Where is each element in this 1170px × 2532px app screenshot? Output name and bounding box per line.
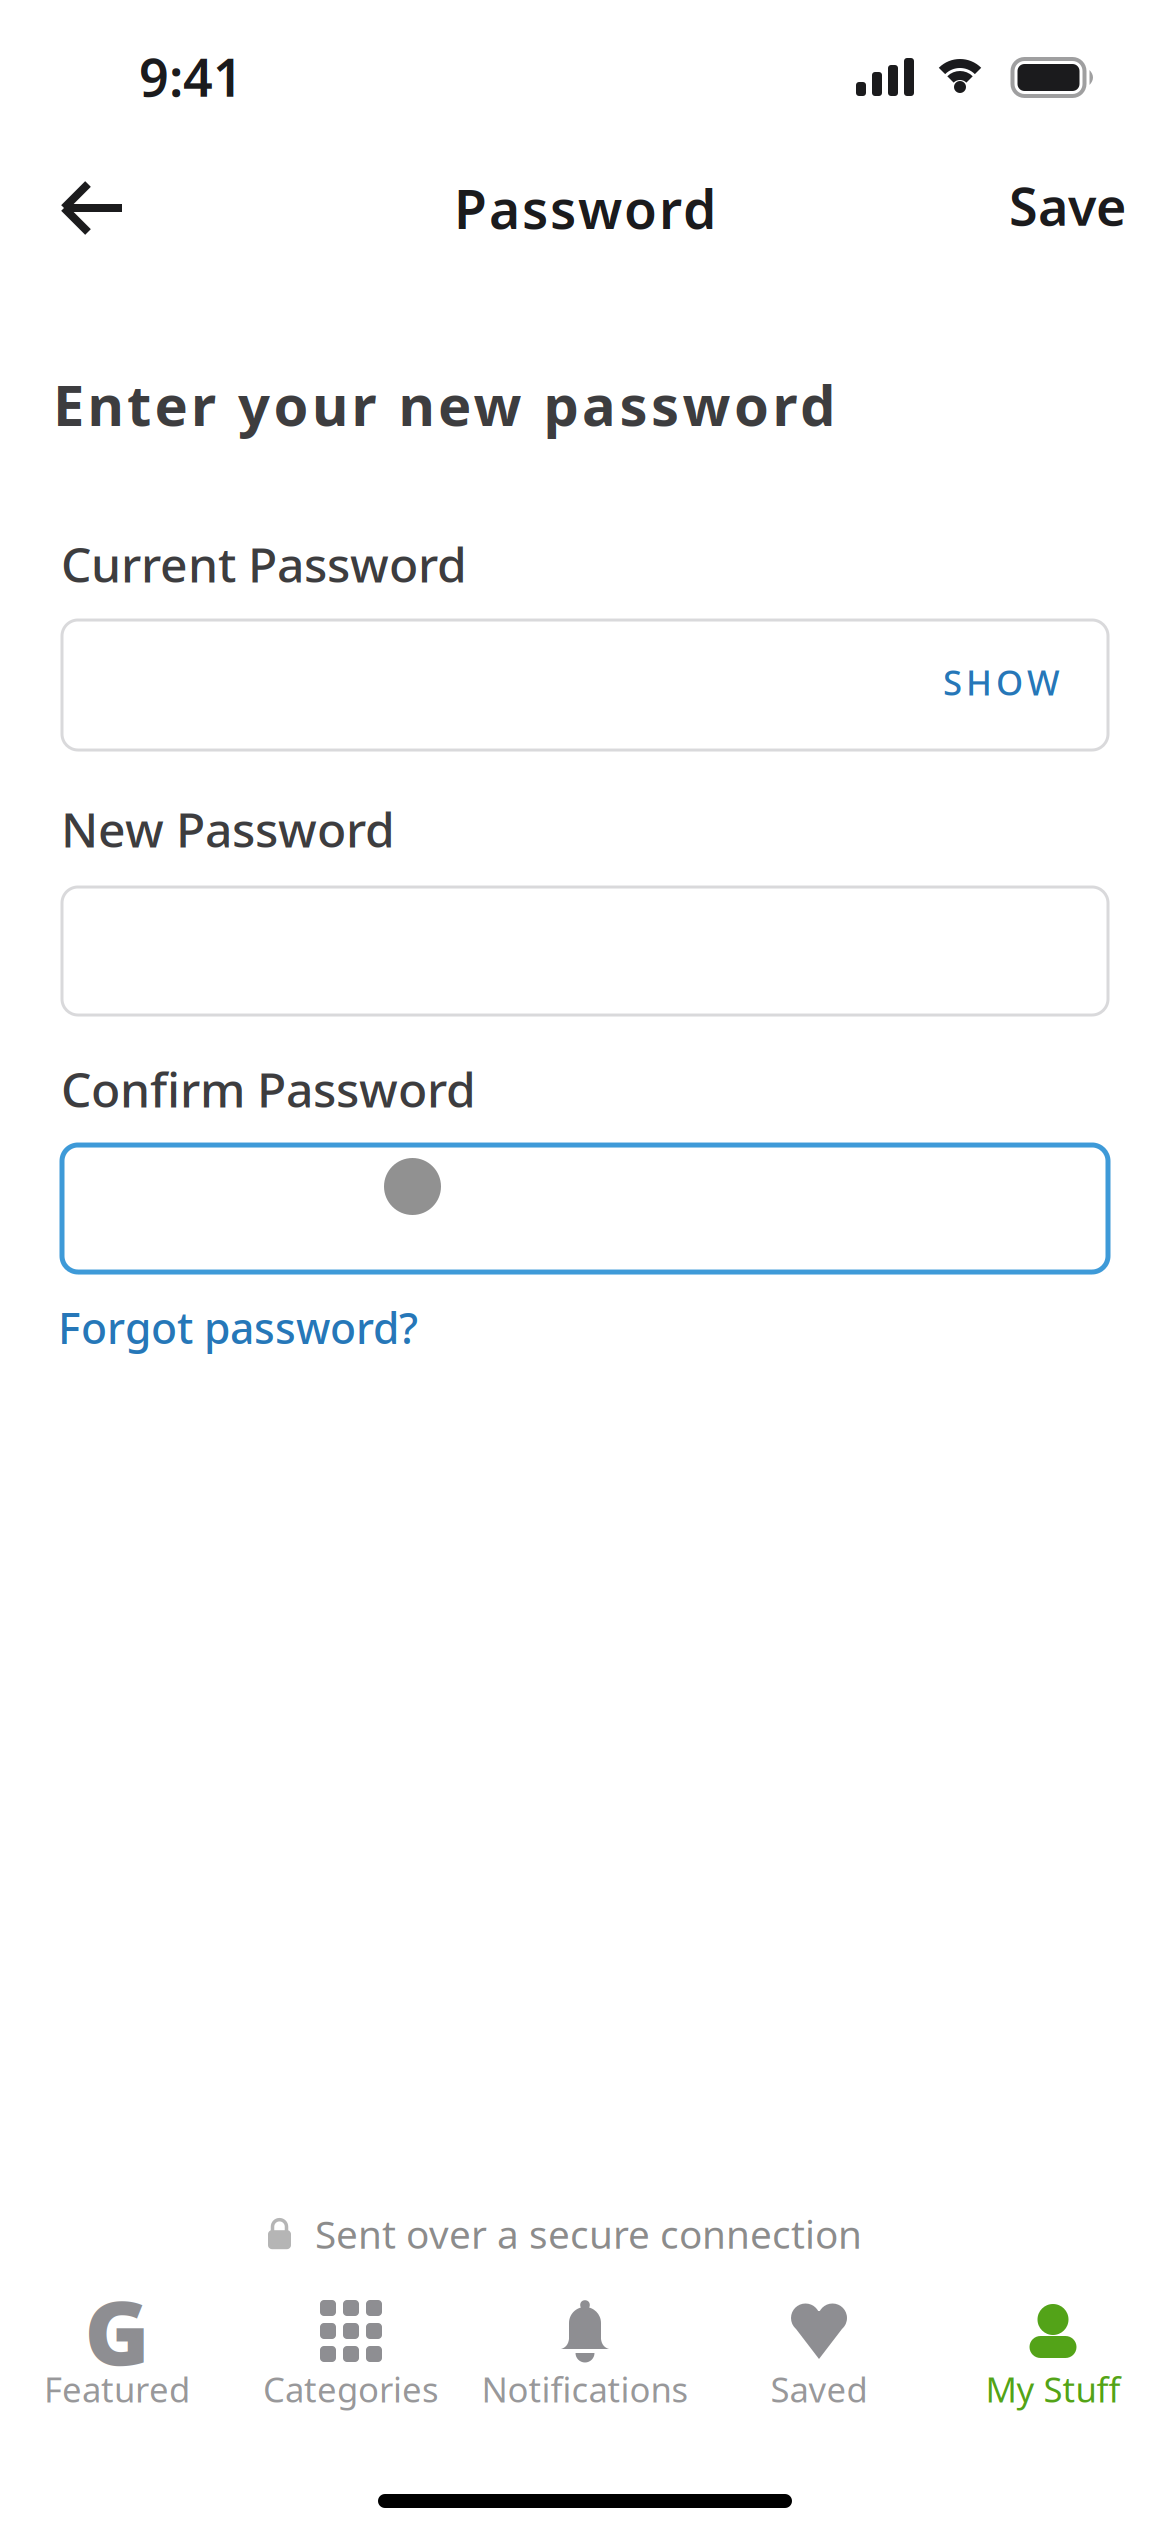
staticText: 9:41 xyxy=(139,42,243,111)
button[interactable]: Confirm Password xyxy=(62,1145,1108,1272)
staticText: Forgot password? xyxy=(58,1299,418,1356)
button[interactable]: Notifications xyxy=(468,2296,702,2412)
button[interactable]: Forgot password? xyxy=(58,1291,418,1364)
button[interactable]: My Stuff xyxy=(936,2296,1170,2412)
staticText: Password xyxy=(454,173,716,244)
staticText: Sent over a secure connection xyxy=(315,2208,862,2259)
staticText: Notifications xyxy=(481,2366,688,2412)
button[interactable]: New Password xyxy=(62,887,1108,1015)
button[interactable]: Save xyxy=(989,159,1146,252)
button[interactable]: Current Password xyxy=(62,620,1108,750)
staticText: Featured xyxy=(44,2366,190,2412)
staticText: Saved xyxy=(770,2366,867,2412)
button[interactable]: Categories xyxy=(234,2296,468,2412)
staticText: Categories xyxy=(263,2366,439,2412)
staticText: Enter your new password xyxy=(53,367,835,441)
staticText: Confirm Password xyxy=(61,1057,476,1121)
staticText: Save xyxy=(1009,171,1126,240)
staticText: G xyxy=(84,2273,149,2389)
staticText: New Password xyxy=(61,797,395,861)
button[interactable]: Saved xyxy=(702,2296,936,2412)
staticText: Current Password xyxy=(61,532,467,596)
staticText: My Stuff xyxy=(985,2366,1120,2412)
staticText: SHOW xyxy=(943,659,1060,705)
button[interactable]: G xyxy=(0,2296,234,2412)
button[interactable]: Back xyxy=(30,156,150,260)
